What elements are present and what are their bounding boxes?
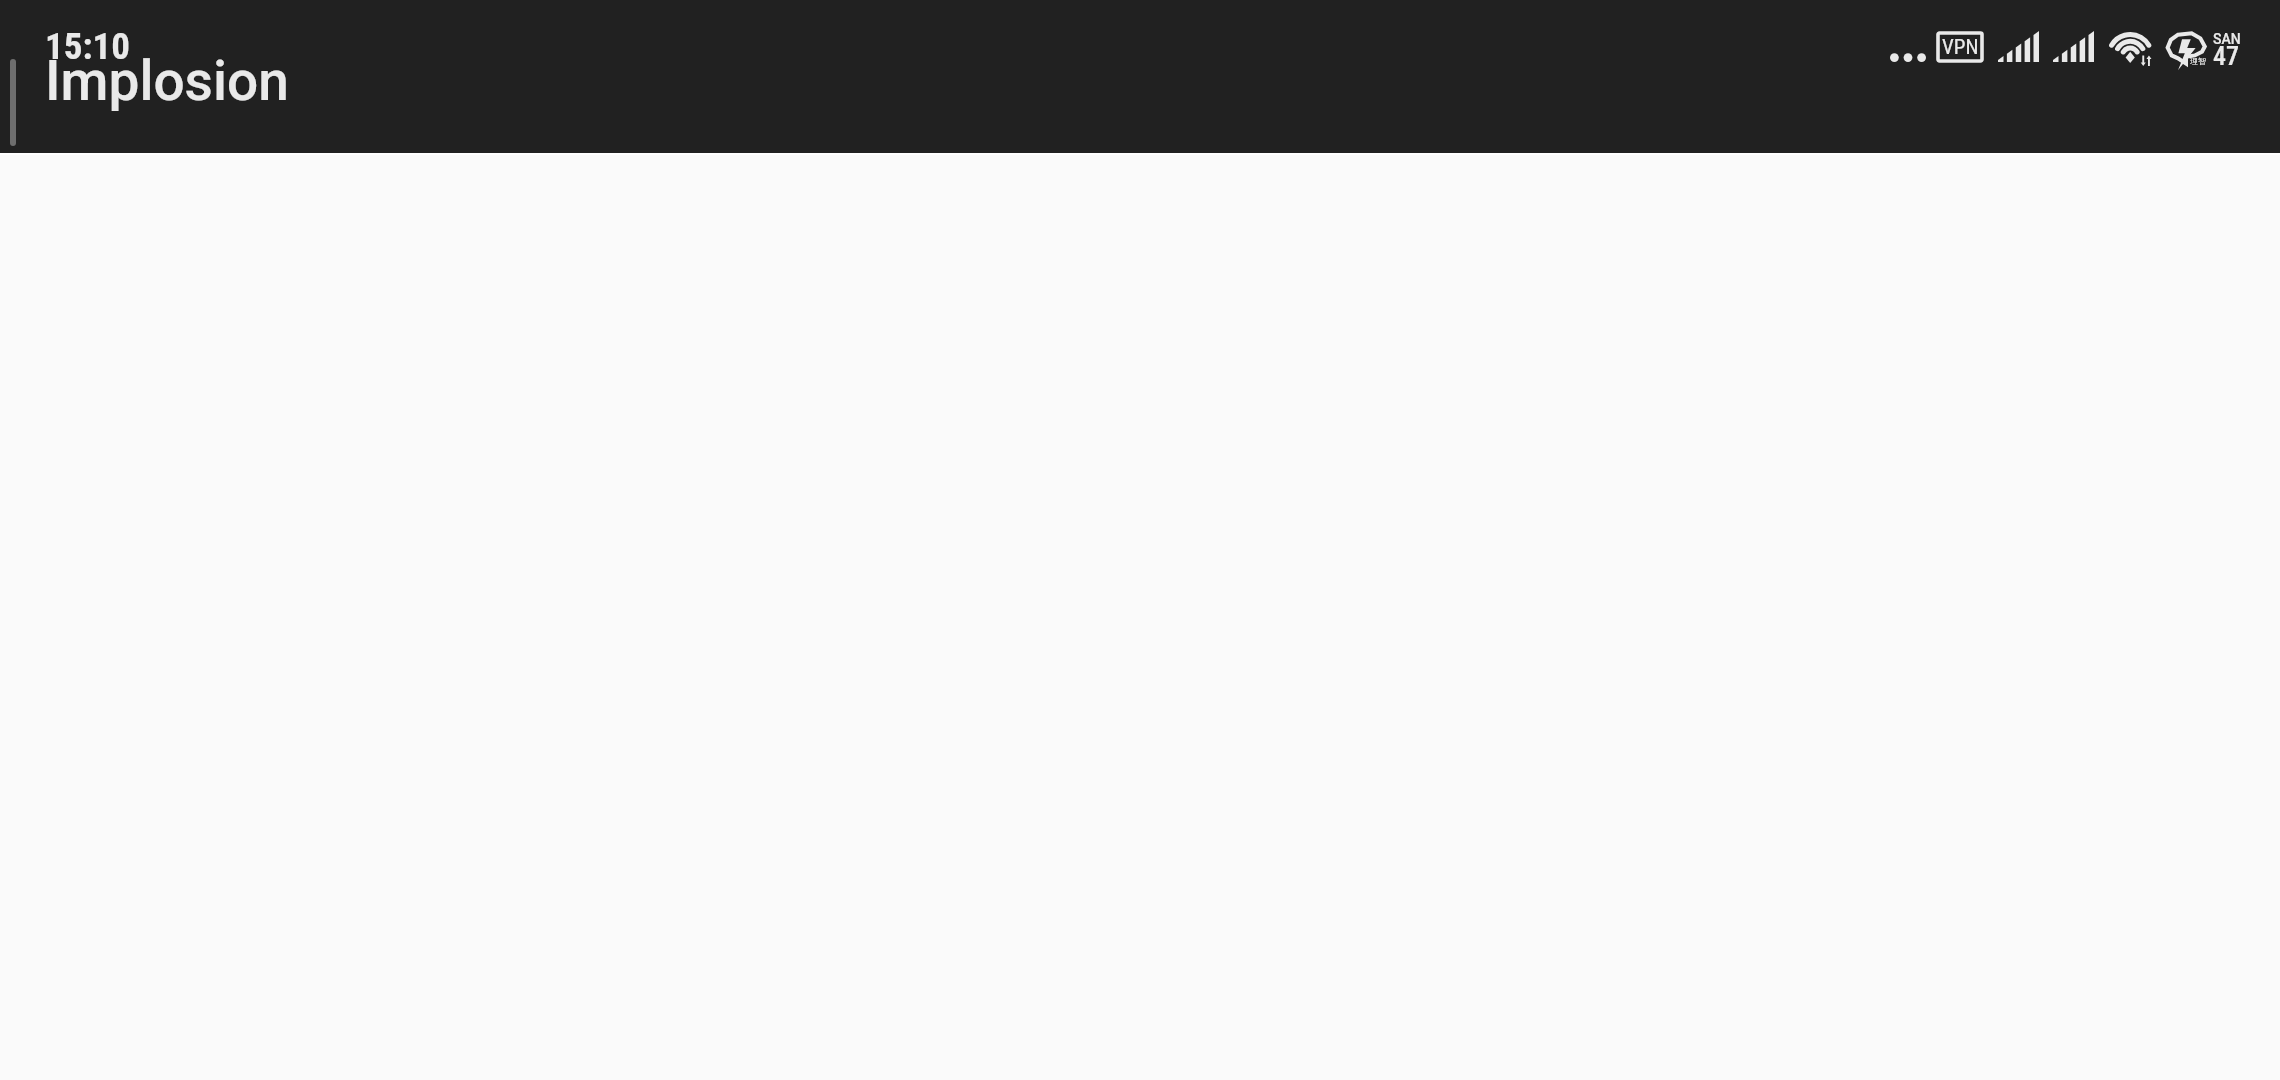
other: Sanity	[2166, 31, 2207, 69]
other: More notifications	[1890, 31, 1926, 62]
other: Mobile signal	[2053, 31, 2094, 62]
other: Mobile signal	[1998, 31, 2039, 62]
staticText: 15:10	[45, 25, 130, 68]
staticText: VPN	[1942, 35, 1979, 60]
button[interactable]: Scroll position	[0, 0, 2280, 153]
other: Scroll position	[10, 59, 16, 146]
other: VPN connected	[1936, 31, 1984, 63]
staticText: SAN	[2213, 31, 2241, 47]
other: Wi-Fi	[2109, 31, 2152, 67]
staticText: 理智	[2190, 56, 2206, 66]
button[interactable]: Implosion	[45, 49, 289, 113]
staticText: 47	[2213, 41, 2239, 71]
